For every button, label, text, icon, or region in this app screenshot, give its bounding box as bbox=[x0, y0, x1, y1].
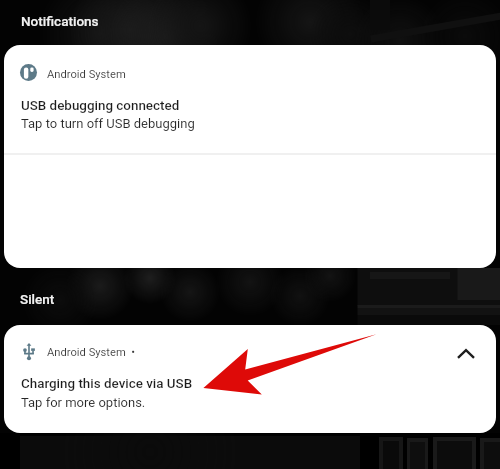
staticText: Charging this device via USB bbox=[21, 376, 193, 392]
staticText: Notifications bbox=[21, 13, 99, 29]
button[interactable]: Android System • bbox=[4, 325, 496, 433]
staticText: Tap to turn off USB debugging bbox=[21, 116, 195, 131]
staticText: Android System • bbox=[47, 346, 136, 359]
button[interactable]: Collapse bbox=[448, 336, 484, 372]
staticText: Android System bbox=[47, 68, 126, 81]
staticText: USB debugging connected bbox=[21, 98, 180, 114]
staticText: Tap for more options. bbox=[21, 395, 146, 410]
button[interactable]: Android System bbox=[4, 45, 496, 268]
staticText: Silent bbox=[20, 291, 55, 307]
